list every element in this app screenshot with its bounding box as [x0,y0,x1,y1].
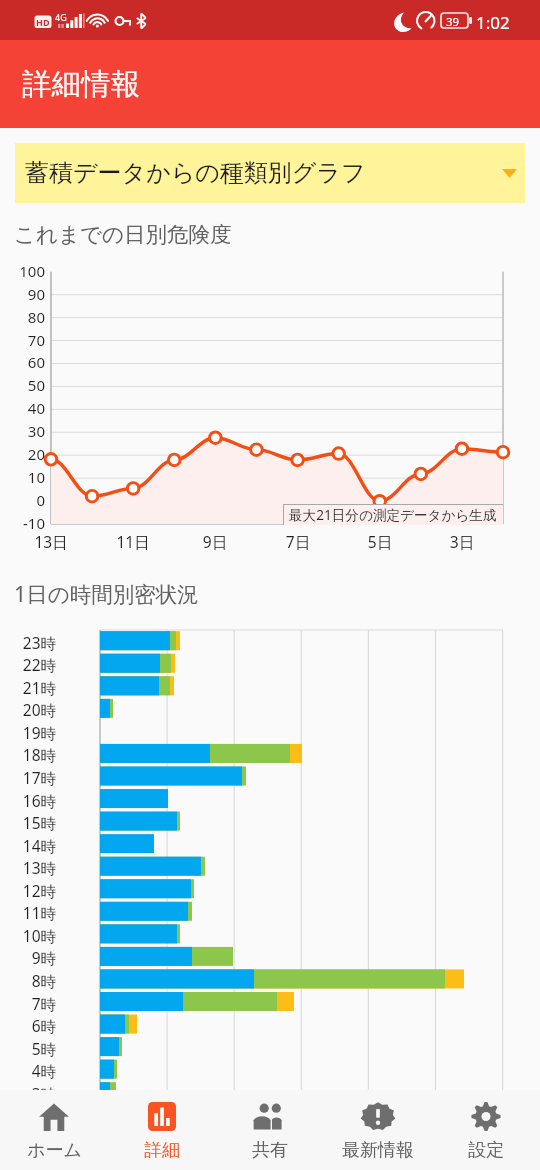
staticText: 3時 [0,1083,56,1104]
button[interactable]: 共有 [216,1090,324,1162]
staticText: 21時 [0,677,56,698]
staticText: 10 [0,467,45,487]
staticText: 9時 [0,947,56,968]
button[interactable]: 蓄積データからの種類別グラフ [15,143,525,203]
staticText: 16時 [0,790,56,811]
staticText: 5日 [350,531,410,552]
staticText: 39 [446,14,460,30]
staticText: 23時 [0,632,56,653]
staticText: 共有 [252,1139,288,1162]
staticText: これまでの日別危険度 [14,221,232,248]
button[interactable]: 最新情報 [324,1090,432,1162]
staticText: 7時 [0,993,56,1014]
staticText: 30 [0,421,45,441]
staticText: 詳細情報 [22,66,140,103]
button[interactable]: 詳細 [108,1090,216,1162]
staticText: 7日 [268,531,328,552]
staticText: 90 [0,284,45,304]
staticText: 60 [0,352,45,372]
staticText: HD [36,16,50,28]
staticText: 100 [0,261,45,281]
staticText: 0 [0,490,45,510]
button[interactable]: 設定 [432,1090,540,1162]
staticText: 15時 [0,812,56,833]
staticText: 1日の時間別密状況 [14,579,199,608]
staticText: 19時 [0,722,56,743]
staticText: 3日 [432,531,492,552]
staticText: 13日 [21,531,81,552]
staticText: 40 [0,398,45,418]
staticText: 20時 [0,699,56,720]
staticText: 4時 [0,1060,56,1081]
staticText: 17時 [0,767,56,788]
staticText: 14時 [0,835,56,856]
staticText: 6時 [0,1015,56,1036]
staticText: 70 [0,330,45,350]
staticText: 20 [0,444,45,464]
staticText: 13時 [0,857,56,878]
staticText: 最新情報 [342,1139,414,1162]
staticText: 5時 [0,1038,56,1059]
staticText: 12時 [0,880,56,901]
staticText: 8時 [0,970,56,991]
staticText: 18時 [0,744,56,765]
staticText: 11時 [0,902,56,923]
staticText: 50 [0,375,45,395]
staticText: 最大21日分の測定データから生成 [289,505,497,524]
staticText: 10時 [0,925,56,946]
staticText: 1:02 [476,11,510,34]
staticText: 11日 [103,531,163,552]
staticText: 蓄積データからの種類別グラフ [25,158,366,188]
staticText: 4G [55,11,67,23]
staticText: 22時 [0,654,56,675]
button[interactable]: ホーム [0,1090,108,1162]
staticText: -10 [0,513,45,533]
staticText: 9日 [185,531,245,552]
staticText: 詳細 [144,1139,180,1162]
staticText: ホーム [27,1139,82,1162]
staticText: 設定 [468,1139,504,1162]
staticText: 80 [0,307,45,327]
